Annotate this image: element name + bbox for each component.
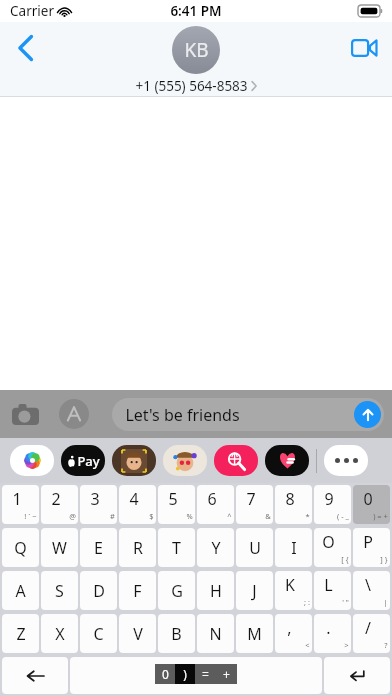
button[interactable]: S (41, 571, 78, 610)
button[interactable]: Return (324, 657, 390, 694)
button[interactable]: Backspace (2, 657, 68, 694)
staticText: < (305, 640, 310, 650)
button[interactable]: FaceTime video call (342, 26, 386, 70)
staticText: Y (211, 537, 221, 559)
staticText: ^ (227, 511, 232, 521)
staticText: O (322, 531, 335, 553)
button[interactable]: Back (4, 26, 48, 70)
staticText: I (291, 537, 297, 559)
staticText: 3 (90, 488, 100, 510)
button[interactable]: V (119, 614, 156, 653)
button[interactable]: Images (214, 445, 258, 476)
button[interactable]: X (41, 614, 78, 653)
button[interactable]: App Store (52, 392, 96, 436)
button[interactable]: G (158, 571, 195, 610)
button[interactable]: Q (2, 528, 39, 567)
button[interactable]: KB (135, 26, 257, 95)
button[interactable]: \ (353, 571, 390, 610)
button[interactable]: Apple Pay (61, 445, 105, 476)
staticText: K (285, 574, 295, 596)
staticText: 8 (285, 488, 295, 510)
staticText: B (171, 623, 182, 645)
button[interactable]: P (353, 528, 390, 567)
button[interactable]: D (80, 571, 117, 610)
button[interactable]: J (236, 571, 273, 610)
staticText: ; : (304, 597, 310, 607)
button[interactable]: 9 (314, 485, 351, 524)
button[interactable]: / (353, 614, 390, 653)
button[interactable]: U (236, 528, 273, 567)
button[interactable]: Digital Touch (265, 445, 309, 476)
button[interactable]: K (275, 571, 312, 610)
button[interactable]: W (41, 528, 78, 567)
button[interactable]: Space (70, 657, 322, 694)
button[interactable]: E (80, 528, 117, 567)
button[interactable]: Memoji stickers (163, 445, 207, 476)
staticText: Pay (77, 452, 100, 470)
staticText: \ (365, 574, 371, 596)
button[interactable]: O (314, 528, 351, 567)
button[interactable]: C (80, 614, 117, 653)
button[interactable]: More (324, 445, 368, 476)
staticText: X (55, 623, 65, 645)
button[interactable]: 1 (2, 485, 39, 524)
button[interactable]: Send (354, 401, 381, 428)
staticText: $ (149, 511, 154, 521)
staticText: | (383, 597, 388, 607)
staticText: 5 (168, 488, 178, 510)
button[interactable]: R (119, 528, 156, 567)
staticText: M (247, 623, 262, 645)
button[interactable]: N (197, 614, 234, 653)
button[interactable]: T (158, 528, 195, 567)
button[interactable]: A (2, 571, 39, 610)
staticText: 1 (12, 488, 22, 510)
staticText: T (172, 537, 181, 559)
button[interactable]: Let's be friends (112, 398, 384, 431)
staticText: ? (384, 640, 388, 650)
staticText: P (363, 531, 373, 553)
staticText: +1 (555) 564-8583 (135, 77, 248, 95)
button[interactable]: H (197, 571, 234, 610)
button[interactable]: Photos (10, 445, 54, 476)
staticText: ( - _ (337, 511, 349, 521)
button[interactable]: 2 (41, 485, 78, 524)
button[interactable]: L (314, 571, 351, 610)
staticText: * (305, 511, 310, 521)
staticText: . (326, 617, 331, 639)
button[interactable]: 5 (158, 485, 195, 524)
staticText: W (52, 537, 67, 559)
button[interactable]: Memoji (112, 445, 156, 476)
button[interactable]: 6 (197, 485, 234, 524)
button[interactable]: I (275, 528, 312, 567)
staticText: ' " (342, 597, 349, 607)
button[interactable]: Camera (3, 392, 47, 436)
staticText: D (93, 580, 105, 602)
button[interactable]: 8 (275, 485, 312, 524)
button[interactable]: , (275, 614, 312, 653)
staticText: [ { (341, 554, 349, 564)
button[interactable]: Z (2, 614, 39, 653)
staticText: = (202, 666, 209, 682)
button[interactable]: F (119, 571, 156, 610)
staticText: Q (14, 537, 27, 559)
button[interactable]: 3 (80, 485, 117, 524)
button[interactable]: 4 (119, 485, 156, 524)
button[interactable]: . (314, 614, 351, 653)
staticText: # (110, 511, 115, 521)
button[interactable]: 7 (236, 485, 273, 524)
staticText: + (223, 666, 230, 682)
staticText: 0 (363, 488, 373, 510)
staticText: N (209, 623, 222, 645)
staticText: G (171, 580, 183, 602)
staticText: Carrier (10, 2, 54, 20)
button[interactable]: M (236, 614, 273, 653)
staticText: 0 (162, 666, 169, 682)
button[interactable]: Y (197, 528, 234, 567)
staticText: F (133, 580, 142, 602)
button[interactable]: 0 (353, 485, 390, 524)
button[interactable]: B (158, 614, 195, 653)
staticText: 7 (246, 488, 256, 510)
staticText: 6:41 PM (170, 2, 222, 20)
staticText: S (55, 580, 64, 602)
staticText: ) (183, 666, 187, 682)
